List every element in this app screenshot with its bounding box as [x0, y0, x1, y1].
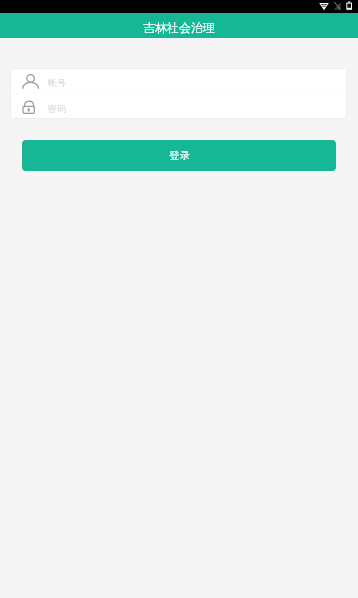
staticText: 密码 — [48, 103, 66, 114]
staticText: 吉林社会治理 — [143, 20, 215, 35]
staticText: 登录 — [169, 149, 190, 162]
button[interactable]: 登录 — [22, 140, 336, 171]
button[interactable]: 帐号 — [10, 68, 347, 93]
button[interactable]: 密码 — [10, 94, 347, 119]
staticText: 帐号 — [48, 77, 66, 88]
